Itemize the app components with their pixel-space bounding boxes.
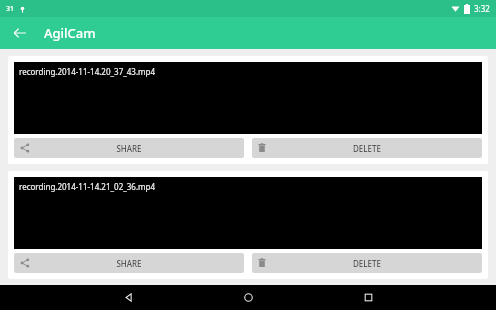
button[interactable]: Recents: [308, 285, 428, 310]
staticText: SHARE: [116, 143, 142, 154]
staticText: recording.2014-11-14.21_02_36.mp4: [19, 181, 156, 192]
button[interactable]: Home: [188, 285, 308, 310]
button[interactable]: DELETE: [252, 253, 482, 273]
staticText: DELETE: [353, 143, 381, 154]
staticText: 31: [6, 4, 15, 14]
staticText: SHARE: [116, 258, 142, 269]
button[interactable]: recording.2014-11-14.20_37_43.mp4: [14, 62, 482, 134]
staticText: AgilCam: [44, 24, 96, 42]
button[interactable]: Back: [8, 21, 32, 45]
button[interactable]: SHARE: [14, 138, 244, 158]
button[interactable]: Back: [68, 285, 188, 310]
button[interactable]: DELETE: [252, 138, 482, 158]
button[interactable]: SHARE: [14, 253, 244, 273]
button[interactable]: recording.2014-11-14.21_02_36.mp4: [14, 177, 482, 249]
staticText: 3:32: [474, 3, 490, 14]
staticText: DELETE: [353, 258, 381, 269]
staticText: recording.2014-11-14.20_37_43.mp4: [19, 66, 156, 77]
